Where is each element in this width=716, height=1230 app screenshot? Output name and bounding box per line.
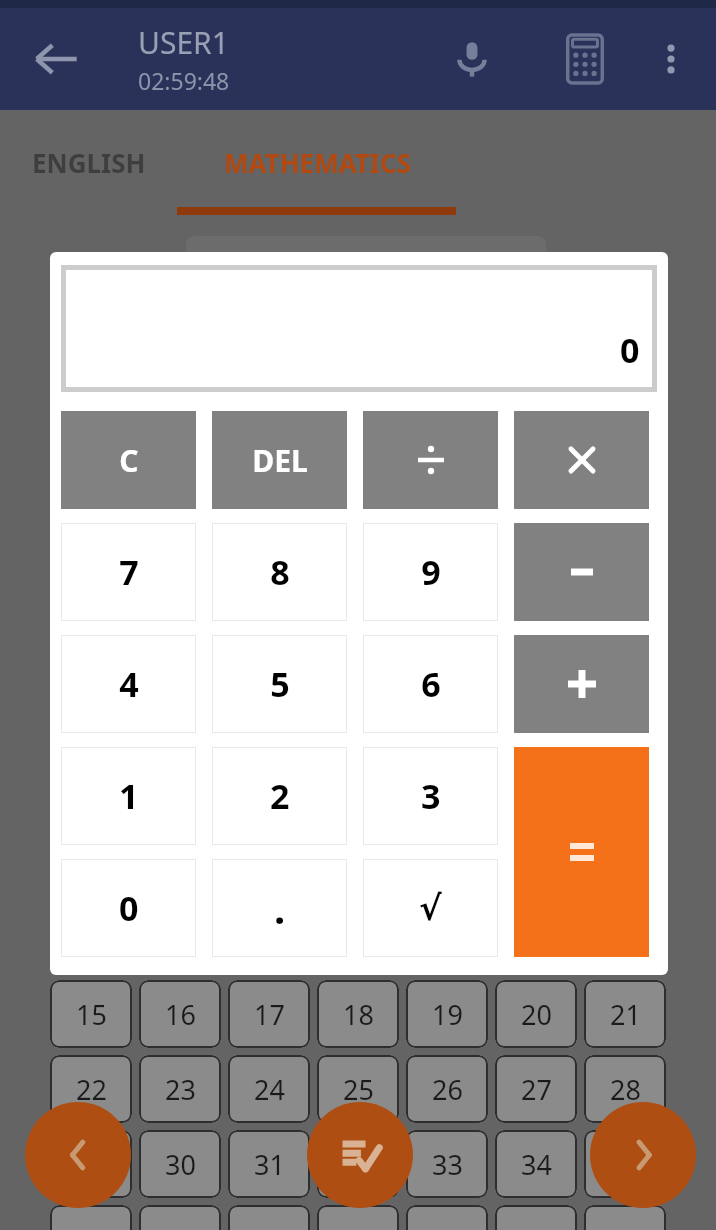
button[interactable]: 40 — [406, 1205, 488, 1230]
staticText: . — [274, 881, 286, 935]
button[interactable]: 11 — [317, 905, 399, 973]
button[interactable]: 36 — [50, 1205, 132, 1230]
staticText: 1 — [119, 773, 139, 819]
button[interactable]: 29 — [50, 1130, 132, 1198]
button[interactable]: 32 — [317, 1130, 399, 1198]
button[interactable]: 1 — [61, 747, 196, 845]
staticText: 5 — [270, 661, 290, 707]
staticText: 10 — [254, 921, 285, 958]
button[interactable]: 42 — [584, 1205, 666, 1230]
button[interactable]: 0 — [61, 859, 196, 957]
button[interactable]: 7 — [61, 523, 196, 621]
button[interactable]: Voice input — [432, 19, 512, 99]
staticText: 9 — [172, 921, 188, 958]
button[interactable]: 13 — [495, 905, 577, 973]
button[interactable]: 23 — [139, 1055, 221, 1123]
staticText: 14 — [610, 921, 641, 958]
button[interactable]: 22 — [50, 1055, 132, 1123]
staticText: 0 — [119, 885, 139, 931]
button[interactable]: 14 — [584, 905, 666, 973]
button[interactable]: Minus — [514, 523, 649, 621]
staticText: 28 — [610, 1071, 641, 1108]
button[interactable]: Submit — [307, 1102, 413, 1208]
button[interactable]: √ — [363, 859, 498, 957]
staticText: 6 — [421, 661, 441, 707]
button[interactable]: 31 — [228, 1130, 310, 1198]
button[interactable]: 20 — [495, 980, 577, 1048]
staticText: MATHEMATICS — [224, 145, 411, 180]
button[interactable]: 26 — [406, 1055, 488, 1123]
staticText: 12 — [432, 921, 463, 958]
staticText: 7 — [119, 549, 139, 595]
button[interactable]: 3 — [363, 747, 498, 845]
button[interactable]: 41 — [495, 1205, 577, 1230]
button[interactable]: Multiply — [514, 411, 649, 509]
button[interactable]: 16 — [139, 980, 221, 1048]
staticText: 20 — [521, 996, 552, 1033]
staticText: 33 — [432, 1146, 463, 1183]
button[interactable]: Equals — [514, 747, 649, 957]
button[interactable]: Back — [22, 25, 90, 93]
button[interactable]: . — [212, 859, 347, 957]
button[interactable]: 12 — [406, 905, 488, 973]
staticText: C — [119, 440, 139, 481]
button[interactable]: 38 — [228, 1205, 310, 1230]
staticText: 3 — [421, 773, 441, 819]
staticText: 26 — [432, 1071, 463, 1108]
staticText: 17 — [254, 996, 285, 1033]
button[interactable]: 25 — [317, 1055, 399, 1123]
staticText: ENGLISH — [32, 145, 146, 180]
button[interactable]: 4 — [61, 635, 196, 733]
staticText: 27 — [521, 1071, 552, 1108]
button[interactable]: Calculator — [545, 19, 625, 99]
staticText: 4 — [119, 661, 139, 707]
staticText: DEL — [252, 440, 308, 481]
button[interactable]: 6 — [363, 635, 498, 733]
button[interactable]: Plus — [514, 635, 649, 733]
button[interactable]: 28 — [584, 1055, 666, 1123]
button[interactable]: Previous — [25, 1102, 131, 1208]
button[interactable]: 27 — [495, 1055, 577, 1123]
button[interactable]: 2 — [212, 747, 347, 845]
button[interactable]: Divide — [363, 411, 498, 509]
staticText: 32 — [343, 1146, 374, 1183]
button[interactable]: ENGLISH — [0, 110, 177, 215]
button[interactable]: Next — [590, 1102, 696, 1208]
staticText: 30 — [165, 1146, 196, 1183]
staticText: √ — [419, 888, 442, 928]
button[interactable]: 17 — [228, 980, 310, 1048]
staticText: 19 — [432, 996, 463, 1033]
button[interactable]: 19 — [406, 980, 488, 1048]
staticText: 23 — [165, 1071, 196, 1108]
button[interactable]: 34 — [495, 1130, 577, 1198]
button[interactable]: 35 — [584, 1130, 666, 1198]
staticText: 2 — [270, 773, 290, 819]
button[interactable]: 9 — [139, 905, 221, 973]
button[interactable]: 15 — [50, 980, 132, 1048]
button[interactable]: MATHEMATICS — [177, 110, 457, 215]
staticText: 11 — [343, 921, 374, 958]
button[interactable]: 9 — [363, 523, 498, 621]
button[interactable]: DEL — [212, 411, 347, 509]
button[interactable]: 33 — [406, 1130, 488, 1198]
button[interactable]: 37 — [139, 1205, 221, 1230]
button[interactable]: 39 — [317, 1205, 399, 1230]
button[interactable]: 24 — [228, 1055, 310, 1123]
button[interactable]: 18 — [317, 980, 399, 1048]
button[interactable]: 30 — [139, 1130, 221, 1198]
button[interactable]: 10 — [228, 905, 310, 973]
button[interactable]: 8 — [50, 905, 132, 973]
staticText: 25 — [343, 1071, 374, 1108]
staticText: 02:59:48 — [138, 65, 230, 96]
staticText: 21 — [610, 996, 641, 1033]
staticText: 15 — [76, 996, 107, 1033]
staticText: 9 — [421, 549, 441, 595]
button[interactable]: C — [61, 411, 196, 509]
button[interactable]: 5 — [212, 635, 347, 733]
staticText: 8 — [83, 921, 99, 958]
button[interactable]: 21 — [584, 980, 666, 1048]
button[interactable]: More options — [636, 24, 706, 94]
button[interactable]: 8 — [212, 523, 347, 621]
